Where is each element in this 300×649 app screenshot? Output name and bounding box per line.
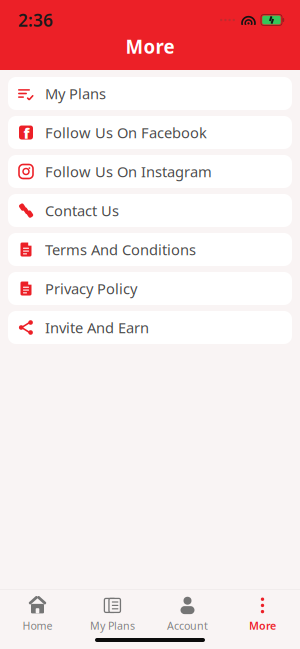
staticText: More <box>249 618 276 633</box>
staticText: Follow Us On Instagram <box>45 162 212 181</box>
button[interactable]: Home <box>0 595 75 633</box>
staticText: Privacy Policy <box>45 279 137 298</box>
button[interactable]: My Plans <box>75 595 150 633</box>
button[interactable]: Follow Us On Instagram <box>8 155 292 188</box>
button[interactable]: Contact Us <box>8 194 292 227</box>
staticText: 2:36 <box>18 8 53 31</box>
button[interactable]: Account <box>150 595 225 633</box>
button[interactable]: Invite And Earn <box>8 311 292 344</box>
staticText: More <box>125 34 174 59</box>
button[interactable]: Terms And Conditions <box>8 233 292 266</box>
button[interactable]: f <box>8 116 292 149</box>
staticText: My Plans <box>45 84 106 103</box>
staticText: My Plans <box>90 618 135 633</box>
staticText: Follow Us On Facebook <box>45 123 207 142</box>
staticText: Account <box>167 618 208 633</box>
button[interactable]: More <box>225 595 300 633</box>
staticText: Contact Us <box>45 201 119 220</box>
staticText: Terms And Conditions <box>45 240 196 259</box>
button[interactable]: Privacy Policy <box>8 272 292 305</box>
staticText: Invite And Earn <box>45 318 149 337</box>
staticText: Home <box>22 618 52 633</box>
staticText: f <box>23 123 29 143</box>
button[interactable]: My Plans <box>8 77 292 110</box>
